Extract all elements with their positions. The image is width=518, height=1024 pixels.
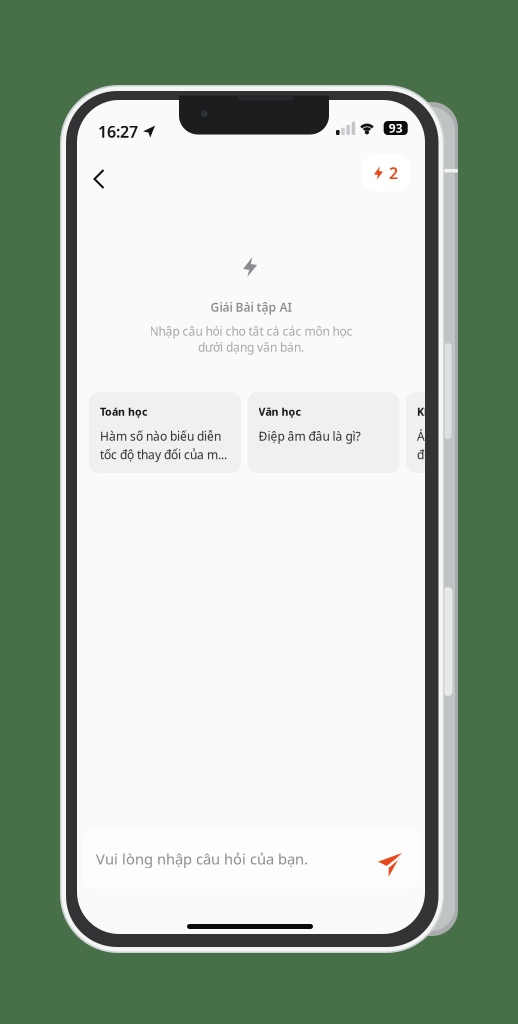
staticText: dưới dạng văn bản. [198, 339, 304, 355]
button[interactable]: Văn học [247, 392, 399, 473]
staticText: Vui lòng nhập câu hỏi của bạn. [96, 849, 308, 868]
button[interactable]: Khoa học [406, 392, 518, 473]
staticText: điện từ trường là gì? [417, 447, 518, 462]
button[interactable]: Back [84, 160, 115, 200]
staticText: Toán học [100, 404, 148, 419]
staticText: Khoa học [417, 404, 467, 419]
staticText: 93 [389, 120, 403, 136]
staticText: 16:27 [98, 121, 138, 142]
button[interactable]: 2 [362, 154, 410, 191]
staticText: Giải Bài tập AI [210, 299, 291, 315]
staticText: Ảnh hưởng của [417, 428, 501, 444]
staticText: Hàm số nào biểu diễn [100, 428, 221, 444]
button[interactable]: Vui lòng nhập câu hỏi của bạn. [82, 827, 421, 889]
staticText: Điệp âm đầu là gì? [258, 428, 360, 444]
staticText: Văn học [258, 404, 301, 419]
button[interactable]: Toán học [89, 392, 241, 473]
staticText: Nhập câu hỏi cho tất cả các môn học [149, 323, 352, 339]
staticText: 2 [389, 162, 398, 184]
staticText: tốc độ thay đổi của m... [100, 447, 227, 462]
